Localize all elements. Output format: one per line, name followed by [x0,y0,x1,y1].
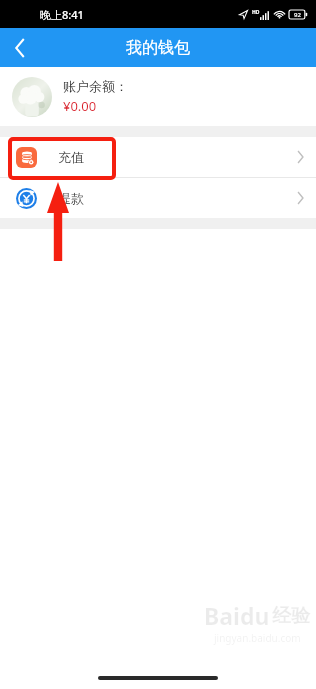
staticText: jingyan.baidu.com [214,631,301,645]
button[interactable]: Back [0,28,40,67]
button[interactable]: 提款 [0,178,316,218]
staticText: 我的钱包 [126,38,190,58]
staticText: HD [252,9,260,16]
staticText: Baidu [204,600,270,631]
staticText: 账户余额： [63,78,128,94]
button[interactable]: 账户余额： [0,67,316,126]
staticText: 提款 [58,190,84,206]
staticText: 经验 [272,604,310,628]
staticText: 晚上8:41 [40,7,84,22]
staticText: 92 [294,11,301,19]
staticText: ¥0.00 [63,97,97,115]
button[interactable]: 充值 [0,137,316,177]
staticText: 充值 [58,149,84,165]
